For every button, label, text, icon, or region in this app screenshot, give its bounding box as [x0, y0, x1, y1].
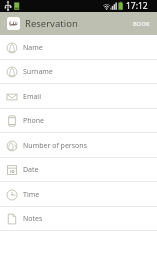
button[interactable]: Date — [0, 158, 157, 182]
button[interactable]: Time — [0, 182, 157, 207]
staticText: BOOK — [133, 20, 150, 28]
staticText: 17:12 — [126, 0, 148, 12]
button[interactable]: Surname — [0, 60, 157, 84]
button[interactable]: Phone — [0, 109, 157, 133]
staticText: Time — [23, 190, 40, 200]
staticText: Notes — [23, 214, 43, 224]
button[interactable]: Name — [0, 35, 157, 60]
staticText: Surname — [23, 67, 53, 77]
staticText: Number of persons — [23, 141, 88, 151]
staticText: Date — [23, 165, 39, 175]
button[interactable]: Email — [0, 84, 157, 109]
button[interactable]: Navigate up — [0, 12, 21, 35]
button[interactable]: Notes — [0, 207, 157, 231]
staticText: Email — [23, 92, 41, 102]
staticText: Reservation — [25, 17, 78, 30]
button[interactable]: Number of persons — [0, 133, 157, 158]
staticText: Name — [23, 43, 43, 53]
staticText: Phone — [23, 116, 45, 126]
button[interactable]: BOOK — [125, 12, 157, 35]
